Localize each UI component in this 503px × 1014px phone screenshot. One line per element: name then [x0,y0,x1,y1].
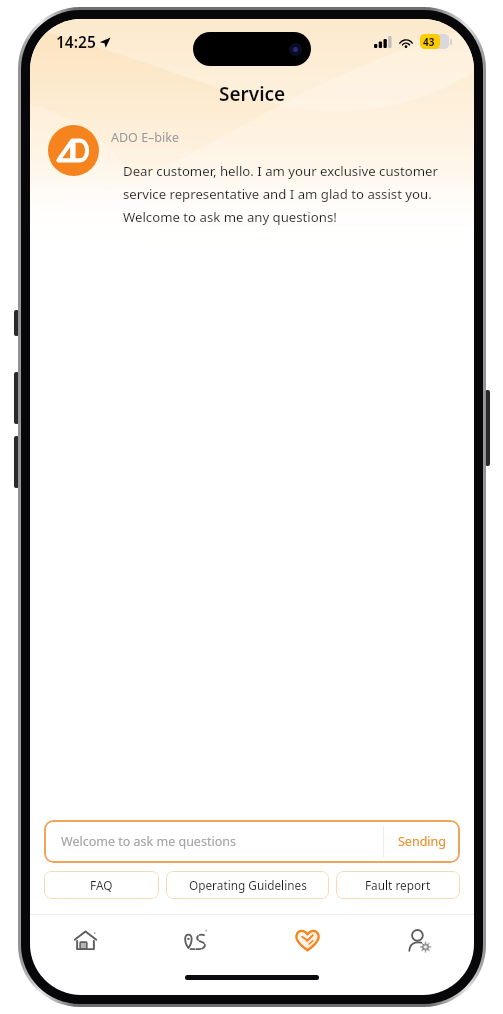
staticText: Fault report [365,877,431,893]
button[interactable]: Sending [384,820,460,863]
button[interactable]: Profile [363,915,474,965]
staticText: 14:25 [56,31,96,52]
button[interactable]: ADO E-bike avatar [48,125,99,176]
staticText: 43 [423,35,435,49]
staticText: Welcome to ask me questions [61,833,236,850]
staticText: Dear customer, hello. I am your exclusiv… [123,162,458,226]
button[interactable]: Service [252,915,363,965]
button[interactable]: Welcome to ask me questions [44,820,460,863]
staticText: Operating Guidelines [189,877,307,893]
button[interactable]: Operating Guidelines [166,871,329,899]
button[interactable]: Routes [141,915,252,965]
button[interactable]: Fault report [336,871,460,899]
staticText: Sending [398,833,446,850]
staticText: FAQ [90,877,113,893]
button[interactable]: Home [30,915,141,965]
staticText: Service [219,81,286,107]
button[interactable]: FAQ [44,871,159,899]
staticText: ADO E–bike [111,129,179,146]
